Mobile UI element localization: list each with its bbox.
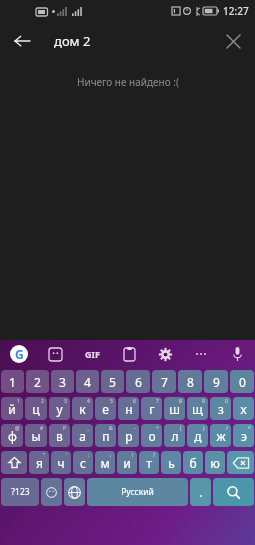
staticText: 9 bbox=[202, 398, 205, 405]
button[interactable]: More options bbox=[183, 340, 219, 368]
button[interactable]: т bbox=[139, 451, 159, 474]
staticText: о bbox=[148, 428, 156, 444]
button[interactable]: е bbox=[95, 397, 116, 420]
button[interactable]: н bbox=[118, 397, 139, 420]
staticText: & bbox=[109, 425, 113, 432]
button[interactable]: Clear bbox=[217, 25, 249, 57]
button[interactable]: Русский bbox=[87, 478, 188, 506]
button[interactable]: ь bbox=[161, 451, 181, 474]
staticText: с bbox=[80, 455, 86, 471]
button[interactable]: 6 bbox=[126, 370, 150, 393]
button[interactable]: с bbox=[73, 451, 93, 474]
staticText: щ bbox=[192, 401, 203, 417]
button[interactable]: 3 bbox=[51, 370, 74, 393]
button[interactable]: . bbox=[190, 478, 211, 506]
staticText: - bbox=[134, 425, 136, 432]
button[interactable]: 9 bbox=[204, 370, 228, 393]
button[interactable]: 8 bbox=[178, 370, 202, 393]
button[interactable]: з bbox=[210, 397, 231, 420]
staticText: Р bbox=[63, 425, 67, 432]
button[interactable]: у bbox=[49, 397, 70, 420]
staticText: б bbox=[189, 455, 197, 471]
button[interactable]: 0 bbox=[230, 370, 254, 393]
button[interactable]: и bbox=[117, 451, 137, 474]
staticText: _ bbox=[87, 425, 90, 432]
staticText: 0 bbox=[239, 374, 246, 390]
button[interactable]: Stickers bbox=[37, 340, 74, 368]
button[interactable]: ю bbox=[205, 451, 225, 474]
staticText: 5 bbox=[110, 398, 113, 405]
button[interactable]: ч bbox=[51, 451, 71, 474]
button[interactable]: л bbox=[164, 424, 185, 447]
button[interactable]: о bbox=[141, 424, 162, 447]
button[interactable]: э bbox=[233, 424, 254, 447]
button[interactable]: а bbox=[72, 424, 93, 447]
button[interactable]: б bbox=[183, 451, 203, 474]
staticText: G bbox=[15, 346, 24, 362]
staticText: 3 bbox=[64, 398, 67, 405]
staticText: н bbox=[125, 401, 133, 417]
staticText: м bbox=[100, 455, 110, 471]
staticText: п bbox=[102, 428, 110, 444]
button[interactable]: щ bbox=[187, 397, 208, 420]
staticText: ) bbox=[203, 425, 205, 432]
button[interactable]: я bbox=[29, 451, 49, 474]
button[interactable]: ц bbox=[25, 397, 47, 420]
staticText: 7 bbox=[156, 398, 159, 405]
button[interactable]: р bbox=[118, 424, 139, 447]
button[interactable]: г bbox=[141, 397, 162, 420]
staticText: ю bbox=[210, 455, 220, 471]
staticText: 2 bbox=[41, 398, 44, 405]
button[interactable]: м bbox=[95, 451, 115, 474]
button[interactable]: Google bbox=[0, 340, 37, 368]
staticText: з bbox=[218, 401, 224, 417]
button[interactable]: Clipboard bbox=[111, 340, 147, 368]
button[interactable]: GIF bbox=[74, 340, 111, 368]
staticText: . bbox=[199, 484, 203, 500]
staticText: ( bbox=[180, 425, 182, 432]
button[interactable]: ш bbox=[164, 397, 185, 420]
button[interactable]: globe bbox=[64, 478, 85, 506]
button[interactable]: 4 bbox=[76, 370, 99, 393]
button[interactable]: ф bbox=[1, 424, 23, 447]
staticText: 8 bbox=[187, 374, 194, 390]
button[interactable]: shift bbox=[1, 451, 27, 474]
button[interactable]: Back bbox=[6, 25, 38, 57]
button[interactable]: emoji bbox=[41, 478, 62, 506]
staticText: 9 bbox=[213, 374, 220, 390]
button[interactable]: Voice input bbox=[219, 340, 255, 368]
button[interactable]: ж bbox=[210, 424, 231, 447]
button[interactable]: к bbox=[72, 397, 93, 420]
staticText: и bbox=[123, 455, 131, 471]
staticText: а bbox=[79, 428, 86, 444]
button[interactable]: 2 bbox=[26, 370, 49, 393]
staticText: 3 bbox=[59, 374, 66, 390]
staticText: в bbox=[56, 428, 63, 444]
button[interactable]: х bbox=[233, 397, 254, 420]
staticText: р bbox=[125, 428, 133, 444]
staticText: " bbox=[43, 452, 46, 459]
staticText: л bbox=[171, 428, 179, 444]
staticText: дом 2 bbox=[54, 32, 91, 50]
staticText: т bbox=[146, 455, 152, 471]
staticText: # bbox=[40, 425, 44, 432]
button[interactable]: д bbox=[187, 424, 208, 447]
button[interactable]: 7 bbox=[152, 370, 176, 393]
staticText: GIF bbox=[85, 348, 100, 360]
staticText: : bbox=[88, 452, 90, 459]
button[interactable]: 5 bbox=[101, 370, 124, 393]
button[interactable]: й bbox=[1, 397, 23, 420]
button[interactable]: ?123 bbox=[1, 478, 39, 506]
button[interactable]: search bbox=[213, 478, 254, 506]
staticText: 12:27 bbox=[223, 4, 249, 18]
button[interactable]: в bbox=[49, 424, 70, 447]
staticText: @ bbox=[15, 425, 20, 432]
staticText: 4 bbox=[84, 374, 91, 390]
staticText: * bbox=[248, 425, 251, 432]
button[interactable]: backspace bbox=[227, 451, 254, 474]
button[interactable]: ы bbox=[25, 424, 47, 447]
staticText: ; bbox=[110, 452, 112, 459]
button[interactable]: 1 bbox=[1, 370, 24, 393]
button[interactable]: п bbox=[95, 424, 116, 447]
button[interactable]: Settings bbox=[147, 340, 183, 368]
